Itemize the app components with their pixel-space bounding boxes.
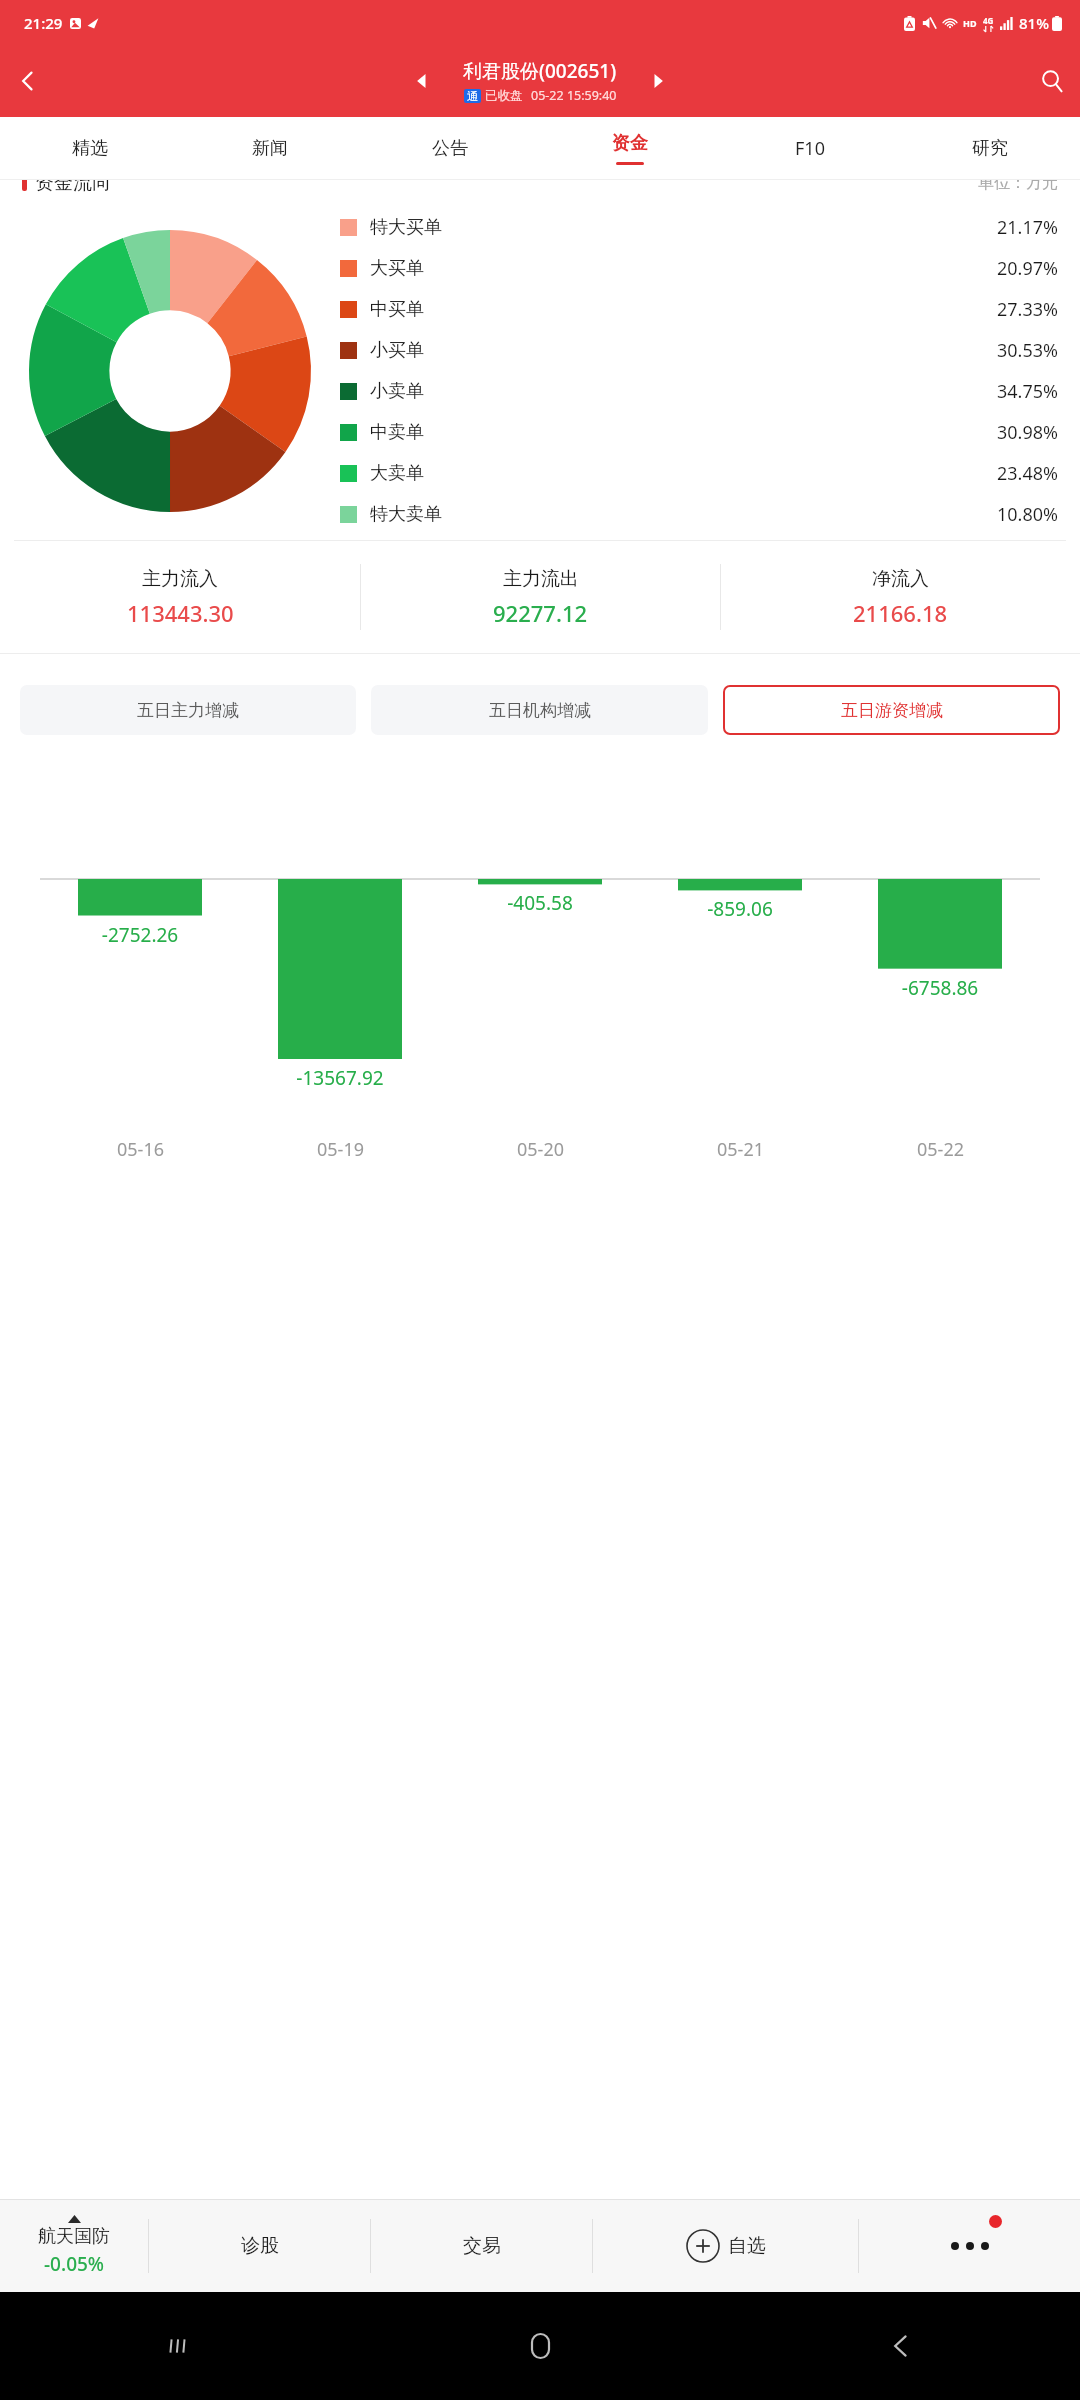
staticText: 21.17%: [997, 215, 1058, 240]
staticText: 主力流入: [142, 567, 218, 591]
staticText: 30.98%: [997, 420, 1058, 445]
staticText: 自选: [728, 2234, 766, 2258]
button[interactable]: 资金: [540, 117, 720, 179]
button[interactable]: More options: [859, 2199, 1080, 2292]
staticText: 公告: [432, 137, 468, 160]
button[interactable]: 大卖单: [340, 453, 1058, 494]
staticText: 113443.30: [127, 598, 234, 628]
button[interactable]: 主力流入: [0, 541, 360, 653]
staticText: 05-19: [317, 1137, 364, 1162]
staticText: 诊股: [241, 2234, 279, 2258]
button[interactable]: F10: [720, 117, 900, 179]
staticText: 20.97%: [997, 256, 1058, 281]
staticText: 新闻: [252, 137, 288, 160]
button[interactable]: 小卖单: [340, 371, 1058, 412]
staticText: 中卖单: [370, 421, 424, 444]
staticText: 五日机构增减: [489, 700, 591, 721]
button[interactable]: 航天国防: [0, 2199, 148, 2292]
staticText: 特大卖单: [370, 503, 442, 526]
button[interactable]: 大买单: [340, 248, 1058, 289]
staticText: 92277.12: [493, 598, 588, 628]
button[interactable]: Next stock: [636, 59, 680, 103]
button[interactable]: 公告: [360, 117, 540, 179]
staticText: 大买单: [370, 257, 424, 280]
staticText: 34.75%: [997, 379, 1058, 404]
button[interactable]: 五日机构增减: [371, 685, 708, 735]
staticText: 五日游资增减: [841, 700, 943, 721]
button[interactable]: 特大买单: [340, 207, 1058, 248]
button[interactable]: Back: [0, 53, 56, 109]
button[interactable]: Search: [1024, 53, 1080, 109]
staticText: 交易: [463, 2234, 501, 2258]
button[interactable]: 中买单: [340, 289, 1058, 330]
staticText: 05-16: [117, 1137, 164, 1162]
staticText: 主力流出: [503, 567, 579, 591]
staticText: 81%: [1019, 13, 1049, 33]
staticText: 05-21: [717, 1137, 764, 1162]
button[interactable]: 交易: [371, 2199, 592, 2292]
staticText: -2752.26: [40, 922, 240, 948]
staticText: -6758.86: [840, 975, 1040, 1001]
button[interactable]: 新闻: [180, 117, 360, 179]
staticText: 净流入: [872, 567, 929, 591]
staticText: 21:29: [24, 13, 63, 33]
staticText: 23.48%: [997, 461, 1058, 486]
staticText: 已收盘: [485, 88, 523, 104]
staticText: 资金: [612, 132, 648, 155]
staticText: 五日主力增减: [137, 700, 239, 721]
staticText: 中买单: [370, 298, 424, 321]
button[interactable]: Previous stock: [400, 59, 444, 103]
staticText: 4G: [983, 15, 994, 26]
staticText: 通: [467, 89, 478, 103]
staticText: 研究: [972, 137, 1008, 160]
staticText: 小买单: [370, 339, 424, 362]
staticText: 30.53%: [997, 338, 1058, 363]
staticText: 资金流向: [35, 180, 111, 195]
staticText: -0.05%: [44, 2251, 105, 2277]
button[interactable]: 特大卖单: [340, 494, 1058, 535]
staticText: 精选: [72, 137, 108, 160]
button[interactable]: 精选: [0, 117, 180, 179]
staticText: 10.80%: [997, 502, 1058, 527]
button[interactable]: 中卖单: [340, 412, 1058, 453]
staticText: 航天国防: [38, 2225, 110, 2248]
staticText: 27.33%: [997, 297, 1058, 322]
button[interactable]: Back: [720, 2292, 1080, 2400]
button[interactable]: 主力流出: [361, 541, 720, 653]
staticText: 单位：万元: [978, 180, 1058, 193]
button[interactable]: 研究: [900, 117, 1080, 179]
staticText: 利君股份(002651): [463, 58, 617, 84]
button[interactable]: 五日游资增减: [723, 685, 1060, 735]
button[interactable]: 诊股: [149, 2199, 370, 2292]
button[interactable]: 净流入: [721, 541, 1080, 653]
button[interactable]: Home: [360, 2292, 720, 2400]
button[interactable]: 小买单: [340, 330, 1058, 371]
staticText: 05-20: [517, 1137, 564, 1162]
staticText: -13567.92: [240, 1065, 440, 1091]
staticText: 21166.18: [853, 598, 948, 628]
staticText: HD: [963, 17, 977, 29]
staticText: 05-22 15:59:40: [531, 87, 617, 104]
staticText: 05-22: [917, 1137, 964, 1162]
button[interactable]: Recent apps: [0, 2292, 360, 2400]
staticText: 特大买单: [370, 216, 442, 239]
staticText: 小卖单: [370, 380, 424, 403]
button[interactable]: 五日主力增减: [20, 685, 356, 735]
staticText: 大卖单: [370, 462, 424, 485]
staticText: -405.58: [440, 890, 640, 916]
staticText: F10: [795, 136, 825, 161]
staticText: -859.06: [640, 896, 840, 922]
button[interactable]: 自选: [593, 2199, 858, 2292]
